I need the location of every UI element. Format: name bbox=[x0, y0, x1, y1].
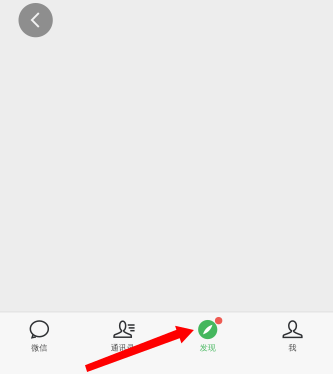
button[interactable]: 我 bbox=[250, 312, 333, 374]
button[interactable]: Back bbox=[18, 3, 53, 37]
button[interactable]: 通讯录 bbox=[83, 312, 166, 374]
staticText: 通讯录 bbox=[111, 343, 135, 353]
button[interactable]: 微信 bbox=[0, 312, 83, 374]
staticText: 我 bbox=[289, 343, 297, 353]
button[interactable]: 发现 bbox=[166, 312, 250, 374]
staticText: 发现 bbox=[200, 343, 216, 353]
staticText: 微信 bbox=[31, 343, 47, 353]
